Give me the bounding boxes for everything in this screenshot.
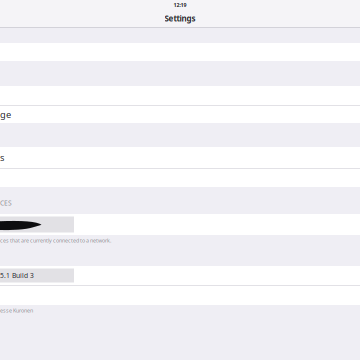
button[interactable]: 5.1 Build 3 <box>0 266 360 285</box>
staticText: ces that are currently connected to a ne… <box>0 237 111 244</box>
button[interactable]: Device <box>0 214 360 235</box>
button[interactable]: s <box>0 147 360 168</box>
staticText: s <box>0 151 4 164</box>
staticText: ge <box>0 108 11 121</box>
staticText: CES <box>0 199 12 207</box>
staticText: 12:19 <box>173 1 186 9</box>
staticText: esse Kuronen <box>0 307 33 314</box>
staticText: 5.1 Build 3 <box>0 271 34 280</box>
staticText: Settings <box>164 13 195 24</box>
button[interactable]: ge <box>0 106 360 123</box>
